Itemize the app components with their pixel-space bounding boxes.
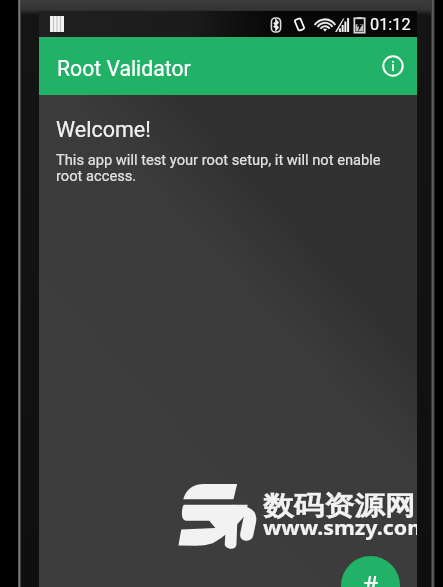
staticText: # [362,571,379,587]
button[interactable]: Run root test [341,556,400,587]
staticText: www.smzy.com [263,514,417,541]
staticText: 数码资源网 [263,489,415,523]
staticText: Welcome! [56,117,151,142]
staticText: 01:12 [370,15,411,34]
staticText: This app will test your root setup, it w… [56,151,409,185]
staticText: Root Validator [57,56,191,81]
button[interactable]: About [373,46,413,86]
